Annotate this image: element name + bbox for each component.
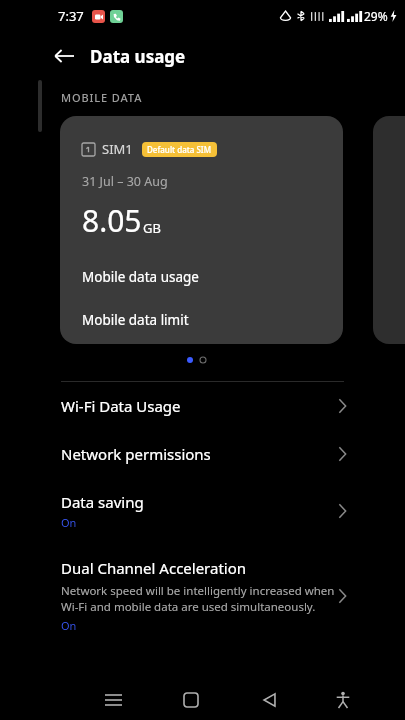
button[interactable]: Recent apps [95, 682, 131, 718]
staticText: Network speed will be intelligently incr… [61, 583, 335, 614]
button[interactable]: Mobile data usage [82, 261, 343, 293]
staticText: 7:37 [58, 7, 84, 25]
staticText: Wi-Fi Data Usage [61, 396, 181, 416]
staticText: Data saving [61, 492, 144, 512]
staticText: MOBILE DATA [61, 90, 143, 105]
staticText: On [61, 618, 77, 633]
staticText: Default data SIM [147, 144, 212, 155]
button[interactable]: Back [251, 682, 287, 718]
staticText: GB [143, 219, 161, 237]
staticText: Dual Channel Acceleration [61, 558, 247, 578]
staticText: 8.05 [82, 200, 142, 241]
button[interactable]: Wi-Fi Data Usage [0, 382, 405, 430]
staticText: 29% [364, 8, 388, 24]
button[interactable]: Back [46, 38, 82, 74]
button[interactable]: Dual Channel Acceleration [0, 544, 405, 647]
button[interactable]: Data saving [0, 478, 405, 544]
staticText: 31 Jul – 30 Aug [82, 173, 168, 190]
button[interactable]: Mobile data limit [82, 304, 343, 336]
button[interactable]: Network permissions [0, 430, 405, 478]
button[interactable]: Home [173, 682, 209, 718]
button[interactable]: Accessibility [325, 682, 361, 718]
staticText: SIM1 [102, 140, 133, 158]
staticText: Data usage [90, 45, 186, 68]
staticText: Network permissions [61, 444, 211, 464]
button[interactable]: SIM1 [60, 116, 343, 344]
staticText: Mobile data limit [82, 311, 189, 329]
staticText: On [61, 515, 77, 530]
staticText: Mobile data usage [82, 268, 199, 286]
button[interactable] [373, 116, 405, 344]
